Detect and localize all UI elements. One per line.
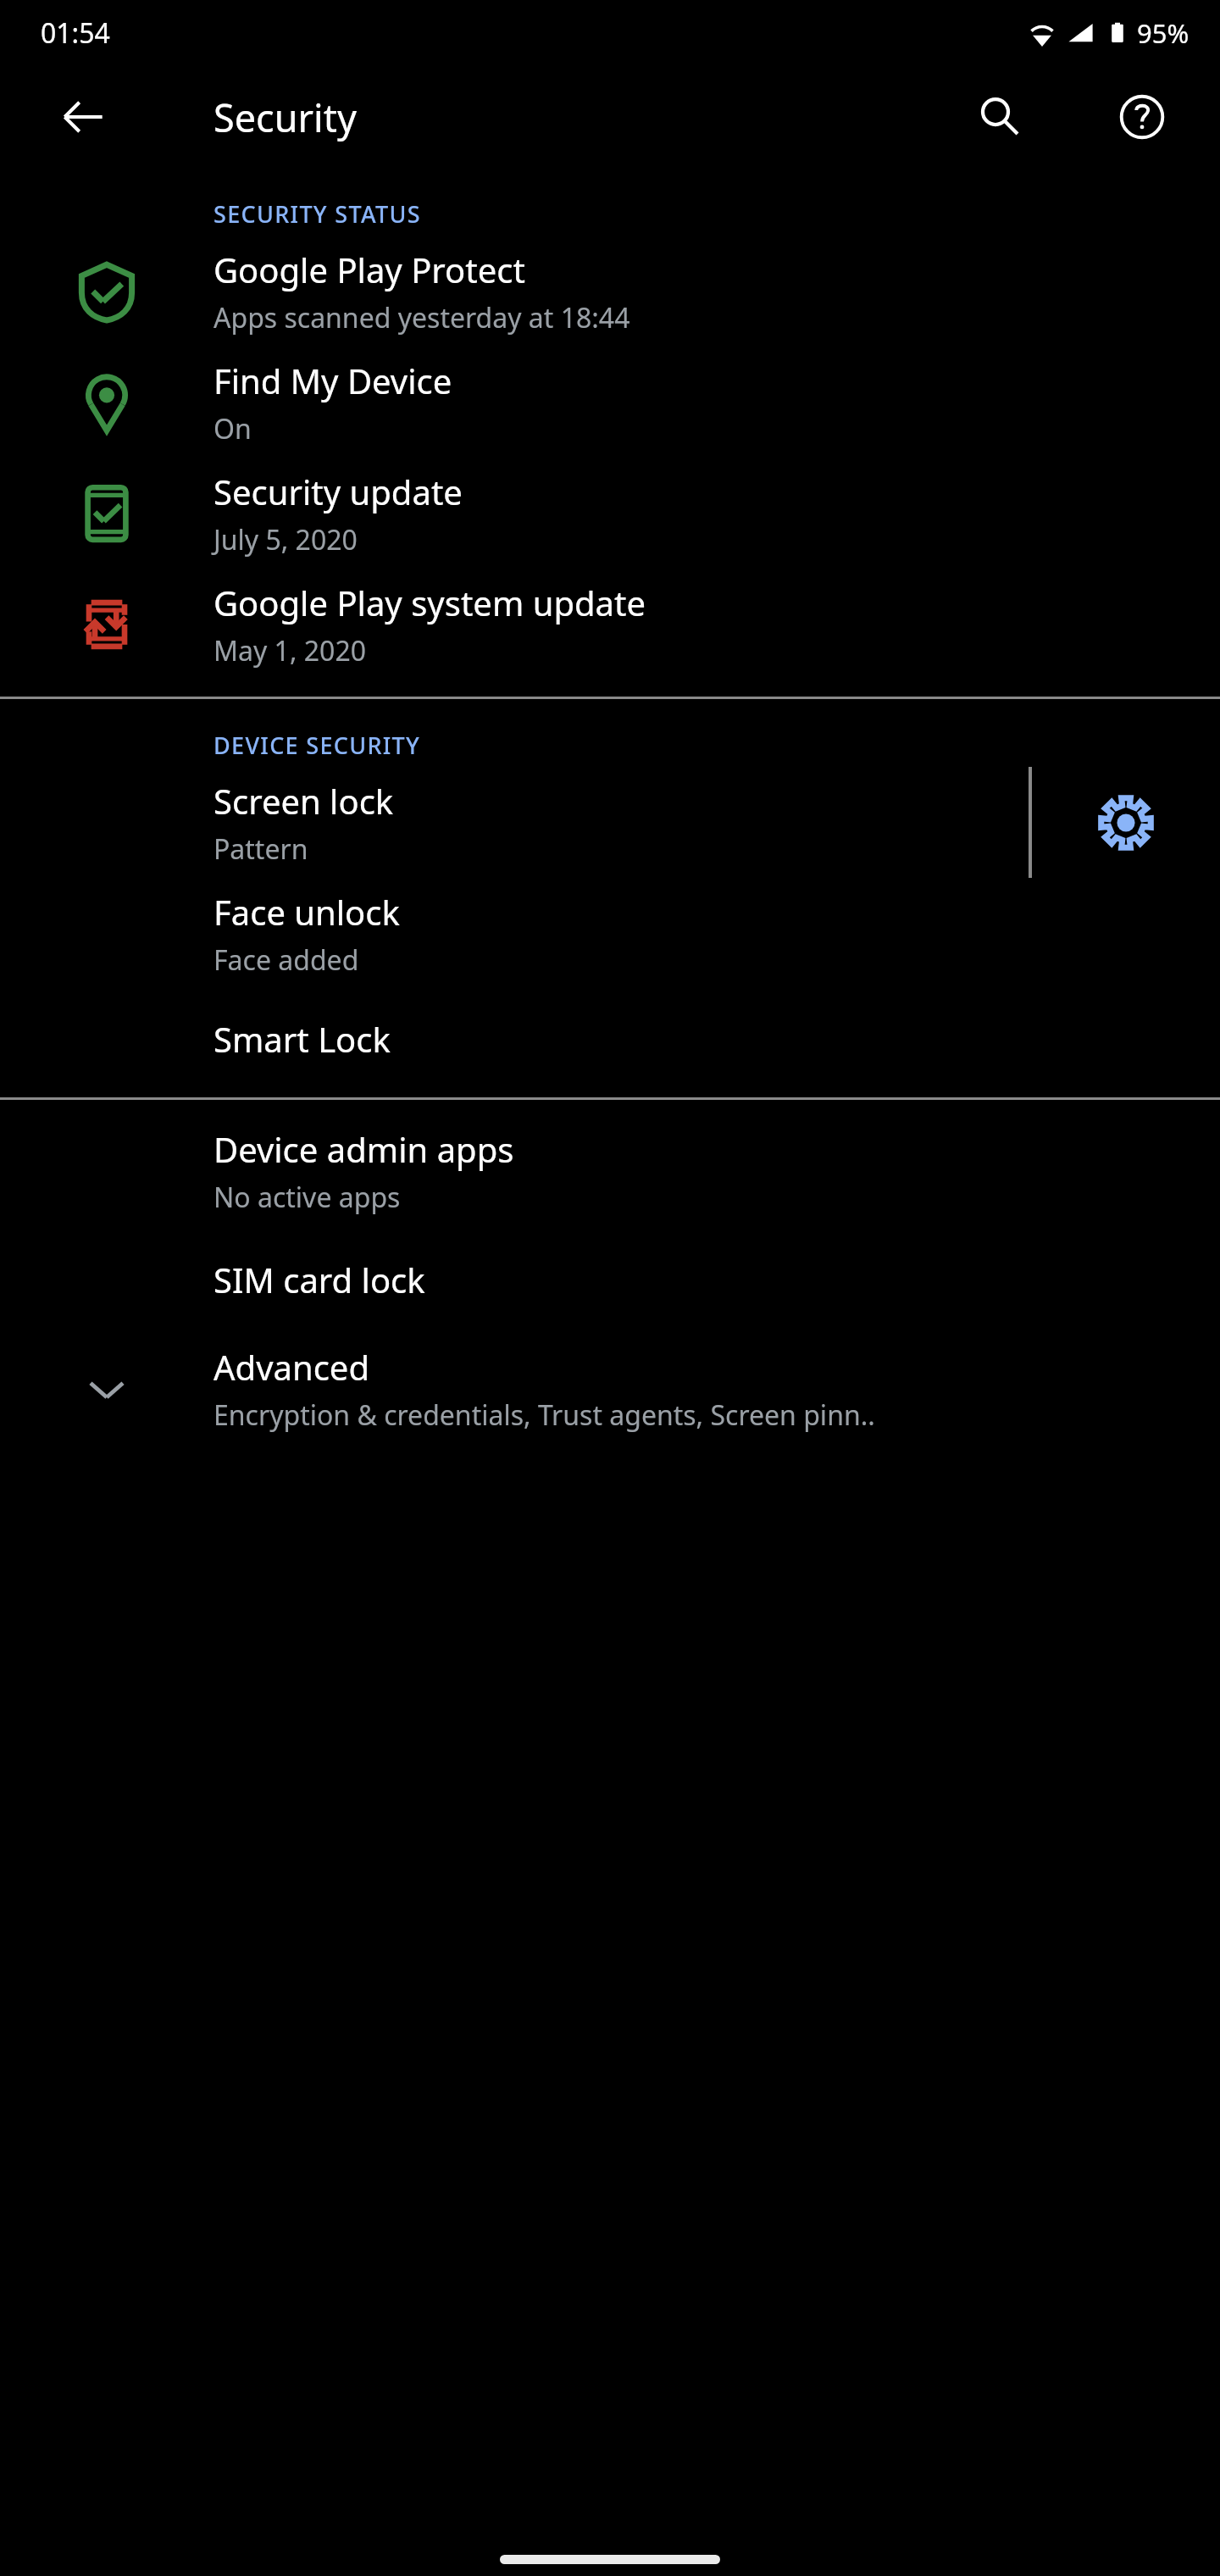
button[interactable]: Device admin apps [0, 1115, 1220, 1226]
button[interactable]: Help [1101, 76, 1183, 158]
button[interactable]: SIM card lock [0, 1226, 1220, 1333]
staticText: Security update [213, 469, 463, 514]
staticText: Smart Lock [213, 1016, 391, 1062]
button[interactable]: Google Play Protect [0, 236, 1220, 347]
staticText: May 1, 2020 [213, 632, 367, 669]
staticText: No active apps [213, 1179, 401, 1216]
staticText: 95% [1137, 15, 1189, 51]
staticText: Encryption & credentials, Trust agents, … [213, 1396, 875, 1434]
button[interactable]: Google Play system update [0, 569, 1220, 680]
staticText: Find My Device [213, 358, 452, 403]
staticText: Apps scanned yesterday at 18:44 [213, 299, 630, 336]
staticText: Face added [213, 941, 359, 979]
staticText: SIM card lock [213, 1257, 425, 1302]
staticText: Advanced [213, 1344, 369, 1390]
staticText: Pattern [213, 830, 308, 868]
staticText: 01:54 [41, 14, 110, 52]
staticText: DEVICE SECURITY [213, 730, 421, 761]
button[interactable]: Screen lock settings [1032, 767, 1220, 878]
staticText: Google Play Protect [213, 247, 525, 292]
button[interactable]: Face unlock [0, 878, 1220, 989]
staticText: SECURITY STATUS [213, 198, 421, 230]
button[interactable]: Find My Device [0, 347, 1220, 458]
button[interactable]: Search [959, 76, 1040, 158]
staticText: On [213, 410, 252, 447]
button[interactable]: Smart Lock [0, 989, 1220, 1089]
button[interactable]: Screen lock [0, 767, 1029, 878]
staticText: Google Play system update [213, 580, 646, 625]
button[interactable]: Advanced [0, 1333, 1220, 1444]
staticText: Device admin apps [213, 1126, 514, 1172]
button[interactable]: Back [42, 76, 124, 158]
staticText: Face unlock [213, 889, 400, 935]
staticText: Screen lock [213, 778, 394, 824]
staticText: July 5, 2020 [213, 521, 358, 558]
button[interactable]: Security update [0, 458, 1220, 569]
staticText: Security [213, 92, 357, 143]
